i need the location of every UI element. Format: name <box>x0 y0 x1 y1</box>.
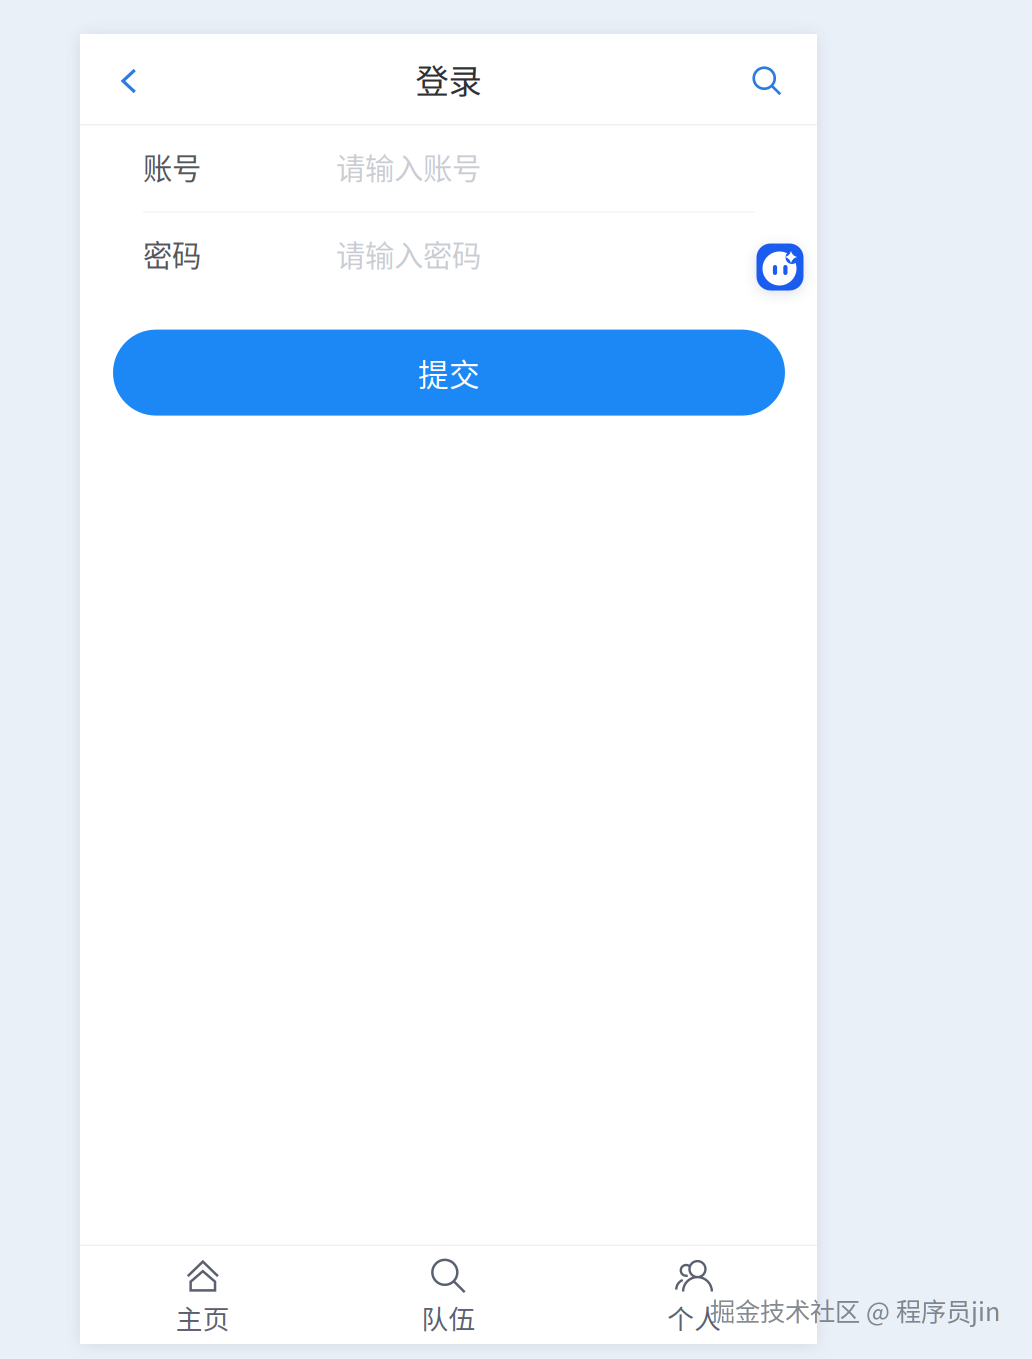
button[interactable]: 账号 <box>143 125 755 211</box>
button[interactable]: Search <box>735 45 799 117</box>
staticText: 请输入密码 <box>336 232 481 275</box>
staticText: 个人 <box>667 1298 721 1337</box>
button[interactable]: AI assistant <box>756 243 803 290</box>
button[interactable]: Back <box>97 45 161 117</box>
button[interactable]: 提交 <box>113 330 785 416</box>
staticText: 密码 <box>143 232 201 275</box>
button[interactable]: 主页 <box>80 1246 326 1344</box>
staticText: 账号 <box>143 145 201 188</box>
button[interactable]: 密码 <box>143 213 755 299</box>
staticText: 主页 <box>176 1298 230 1337</box>
button[interactable]: 队伍 <box>326 1246 571 1344</box>
staticText: 队伍 <box>421 1298 475 1337</box>
staticText: 登录 <box>415 55 481 103</box>
staticText: 掘金技术社区 @ 程序员jin <box>710 1292 1000 1328</box>
staticText: 请输入账号 <box>336 145 481 188</box>
staticText: 提交 <box>418 350 480 395</box>
button[interactable]: 个人 <box>571 1246 817 1344</box>
